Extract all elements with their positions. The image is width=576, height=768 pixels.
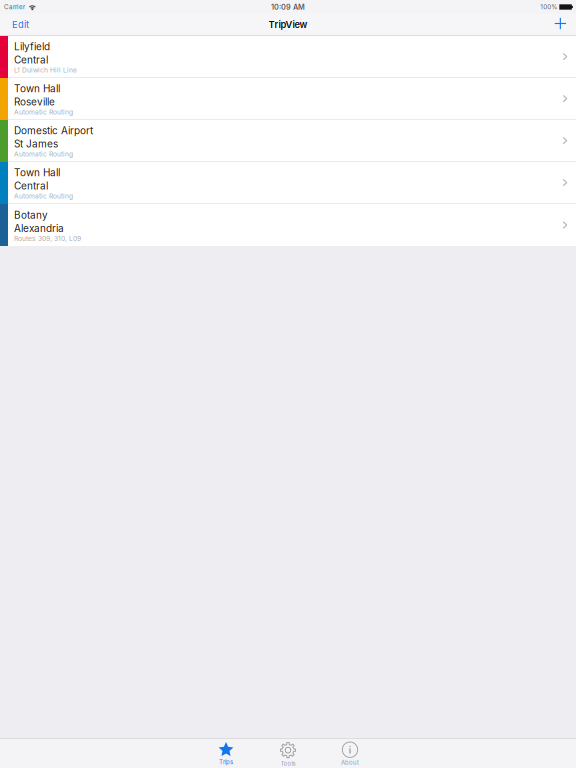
staticText: Domestic Airport [14, 125, 93, 137]
button[interactable]: Town Hall [0, 162, 576, 204]
staticText: 100% [540, 3, 557, 11]
button[interactable]: Town Hall [0, 78, 576, 120]
staticText: Lilyfield [14, 41, 50, 53]
button[interactable]: Tools [257, 739, 319, 768]
staticText: L1 Dulwich Hill Line [14, 66, 77, 74]
staticText: Carrier [4, 3, 25, 11]
staticText: Automatic Routing [14, 108, 73, 116]
button[interactable]: Botany [0, 204, 576, 246]
staticText: Town Hall [14, 83, 60, 95]
staticText: Edit [12, 19, 29, 30]
staticText: St James [14, 138, 58, 150]
staticText: Trips [219, 758, 233, 766]
button[interactable]: Lilyfield [0, 36, 576, 78]
button[interactable]: Trips [195, 739, 257, 768]
staticText: Roseville [14, 96, 55, 108]
staticText: About [341, 759, 359, 766]
staticText: Alexandria [14, 222, 64, 234]
staticText: Automatic Routing [14, 192, 73, 200]
staticText: TripView [268, 19, 307, 30]
button[interactable]: Domestic Airport [0, 120, 576, 162]
staticText: Routes 309, 310, L09 [14, 235, 81, 243]
staticText: Central [14, 180, 48, 192]
staticText: Central [14, 54, 48, 66]
button[interactable]: About [319, 739, 381, 768]
staticText: 10:09 AM [271, 3, 305, 11]
staticText: Automatic Routing [14, 150, 73, 158]
button[interactable]: Add trip [549, 14, 570, 35]
staticText: Tools [280, 760, 295, 767]
staticText: Botany [14, 209, 48, 221]
staticText: Town Hall [14, 167, 60, 179]
button[interactable]: Edit [6, 14, 35, 35]
